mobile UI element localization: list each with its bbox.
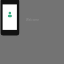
button[interactable]: Menu (0, 0, 64, 5)
staticText: Welcome (26, 18, 39, 22)
